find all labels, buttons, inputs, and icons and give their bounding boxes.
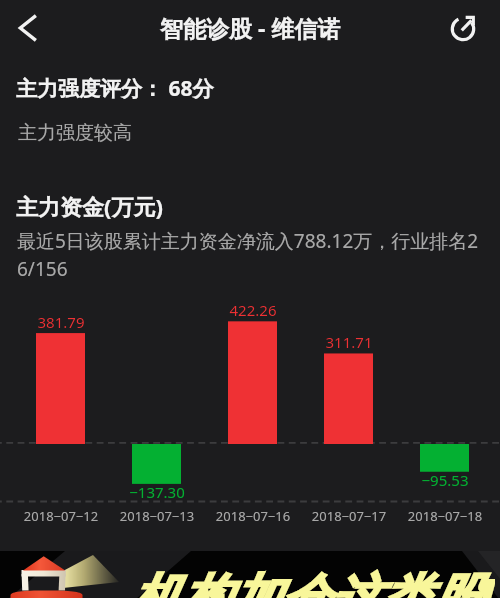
staticText: −95.53 bbox=[397, 470, 493, 490]
staticText: 2018−07−17 bbox=[301, 507, 397, 525]
staticText: 2018−07−18 bbox=[397, 507, 493, 525]
staticText: 主力资金(万元) bbox=[16, 191, 163, 221]
staticText: 311.71 bbox=[301, 332, 397, 352]
staticText: 主力强度评分： 68分 bbox=[16, 74, 214, 103]
staticText: 智能诊股 - 维信诺 bbox=[160, 12, 341, 43]
staticText: 381.79 bbox=[13, 312, 109, 332]
staticText: 主力强度较高 bbox=[18, 121, 132, 145]
staticText: 2018−07−12 bbox=[13, 507, 109, 525]
staticText: 机构加仓这类股! bbox=[129, 562, 495, 598]
staticText: 2018−07−16 bbox=[205, 507, 301, 525]
staticText: 最近5日该股累计主力资金净流入788.12万，行业排名2 6/156 bbox=[17, 228, 479, 282]
button[interactable]: Back bbox=[8, 8, 48, 48]
button[interactable]: Share bbox=[449, 15, 477, 43]
staticText: 422.26 bbox=[205, 300, 301, 320]
staticText: 2018−07−13 bbox=[109, 507, 205, 525]
button[interactable]: 机构加仓这类股! bbox=[0, 551, 500, 598]
staticText: −137.30 bbox=[109, 482, 205, 502]
